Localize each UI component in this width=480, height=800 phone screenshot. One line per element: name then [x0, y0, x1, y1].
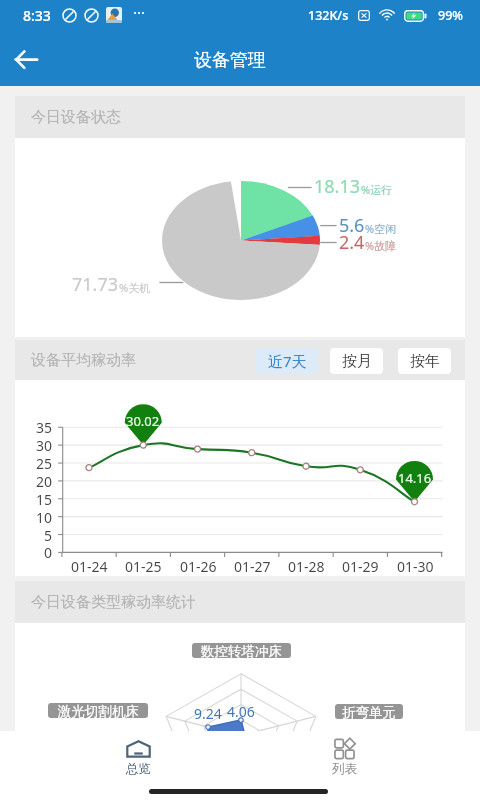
- staticText: %运行: [361, 182, 393, 197]
- staticText: %关机: [119, 280, 151, 295]
- staticText: 01-26: [180, 557, 217, 576]
- staticText: 35: [36, 418, 53, 437]
- button[interactable]: 按月: [330, 348, 383, 374]
- button[interactable]: Back: [5, 38, 47, 80]
- button[interactable]: 总览: [108, 737, 168, 782]
- staticText: 01-29: [342, 557, 379, 576]
- staticText: ···: [133, 2, 146, 22]
- staticText: 0: [44, 543, 53, 562]
- staticText: 01-25: [125, 557, 162, 576]
- staticText: 10: [36, 508, 53, 527]
- staticText: 132K/s: [308, 7, 349, 24]
- staticText: 18.13: [314, 174, 361, 199]
- staticText: 近7天: [268, 351, 307, 371]
- staticText: 25: [36, 454, 53, 473]
- staticText: 按月: [342, 352, 372, 371]
- staticText: 01-30: [397, 557, 434, 576]
- staticText: 20: [36, 472, 53, 491]
- staticText: 8:33: [23, 6, 51, 25]
- staticText: 按年: [410, 352, 440, 371]
- staticText: 30.02: [126, 412, 160, 430]
- staticText: 01-24: [71, 557, 108, 576]
- staticText: %空闲: [365, 221, 397, 236]
- staticText: 今日设备类型稼动率统计: [31, 593, 196, 612]
- staticText: 5: [44, 526, 53, 545]
- staticText: 14.16: [398, 469, 432, 487]
- button[interactable]: 列表: [314, 737, 374, 782]
- button[interactable]: 按年: [398, 348, 451, 374]
- staticText: 4.06: [227, 702, 255, 721]
- staticText: 激光切割机床: [58, 703, 139, 718]
- staticText: 5.6: [339, 213, 365, 238]
- staticText: 2.4: [339, 230, 365, 255]
- staticText: 01-28: [288, 557, 325, 576]
- staticText: 71.73: [72, 272, 119, 297]
- staticText: 设备平均稼动率: [31, 351, 136, 370]
- staticText: 99%: [438, 7, 463, 24]
- staticText: 15: [36, 490, 53, 509]
- staticText: 设备管理: [194, 49, 266, 72]
- staticText: 数控转塔冲床: [201, 643, 282, 658]
- staticText: 30: [36, 436, 53, 455]
- staticText: 折弯单元: [342, 704, 396, 719]
- staticText: 01-27: [234, 557, 271, 576]
- button[interactable]: 近7天: [256, 348, 318, 374]
- staticText: 今日设备状态: [31, 108, 121, 127]
- staticText: %故障: [365, 238, 397, 253]
- staticText: 总览: [126, 761, 151, 777]
- staticText: 9.24: [194, 704, 222, 723]
- staticText: 列表: [332, 761, 357, 777]
